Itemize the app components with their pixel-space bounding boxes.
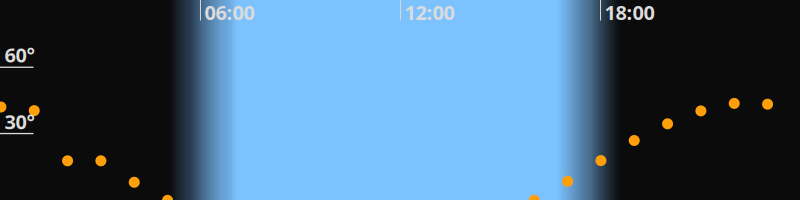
staticText: 18:00	[604, 0, 654, 26]
staticText: 60°	[4, 41, 34, 68]
staticText: 06:00	[204, 0, 254, 26]
staticText: 30°	[4, 108, 34, 135]
staticText: 12:00	[404, 0, 454, 26]
